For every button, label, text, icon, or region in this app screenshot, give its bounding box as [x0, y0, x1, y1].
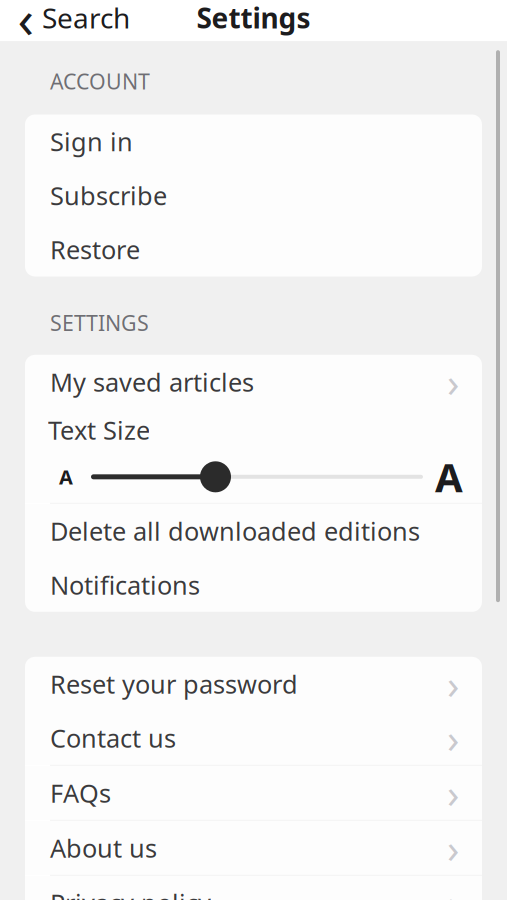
button[interactable]: Sign in: [25, 114, 482, 168]
staticText: About us: [50, 831, 157, 865]
staticText: ›: [447, 766, 459, 819]
button[interactable]: About us: [25, 821, 482, 875]
staticText: Privacy policy: [50, 886, 211, 900]
staticText: ›: [447, 657, 459, 710]
staticText: Reset your password: [50, 667, 298, 701]
staticText: ‹: [17, 0, 34, 53]
staticText: A: [59, 464, 73, 490]
button[interactable]: Contact us: [25, 711, 482, 765]
staticText: Text Size: [48, 413, 150, 447]
staticText: Restore: [50, 233, 140, 266]
button[interactable]: ‹: [0, 0, 130, 42]
button[interactable]: Subscribe: [25, 168, 482, 222]
staticText: A: [435, 450, 463, 503]
staticText: ›: [447, 355, 459, 408]
staticText: ›: [447, 821, 459, 874]
staticText: ACCOUNT: [50, 67, 150, 95]
button[interactable]: Reset your password: [25, 657, 482, 711]
staticText: SETTINGS: [50, 308, 149, 337]
staticText: Sign in: [50, 125, 133, 158]
staticText: Subscribe: [50, 179, 167, 212]
button[interactable]: FAQs: [25, 766, 482, 820]
staticText: Delete all downloaded editions: [50, 514, 420, 548]
button[interactable]: Delete all downloaded editions: [25, 504, 482, 558]
button[interactable]: Restore: [25, 222, 482, 276]
staticText: My saved articles: [50, 365, 254, 399]
staticText: Settings: [196, 0, 310, 36]
staticText: Contact us: [50, 721, 176, 755]
button[interactable]: Notifications: [25, 558, 482, 612]
button[interactable]: My saved articles: [25, 355, 482, 409]
staticText: FAQs: [50, 776, 111, 810]
staticText: Search: [42, 0, 130, 36]
staticText: Notifications: [50, 568, 200, 602]
staticText: ›: [447, 711, 459, 764]
button[interactable]: Privacy policy: [25, 876, 482, 900]
